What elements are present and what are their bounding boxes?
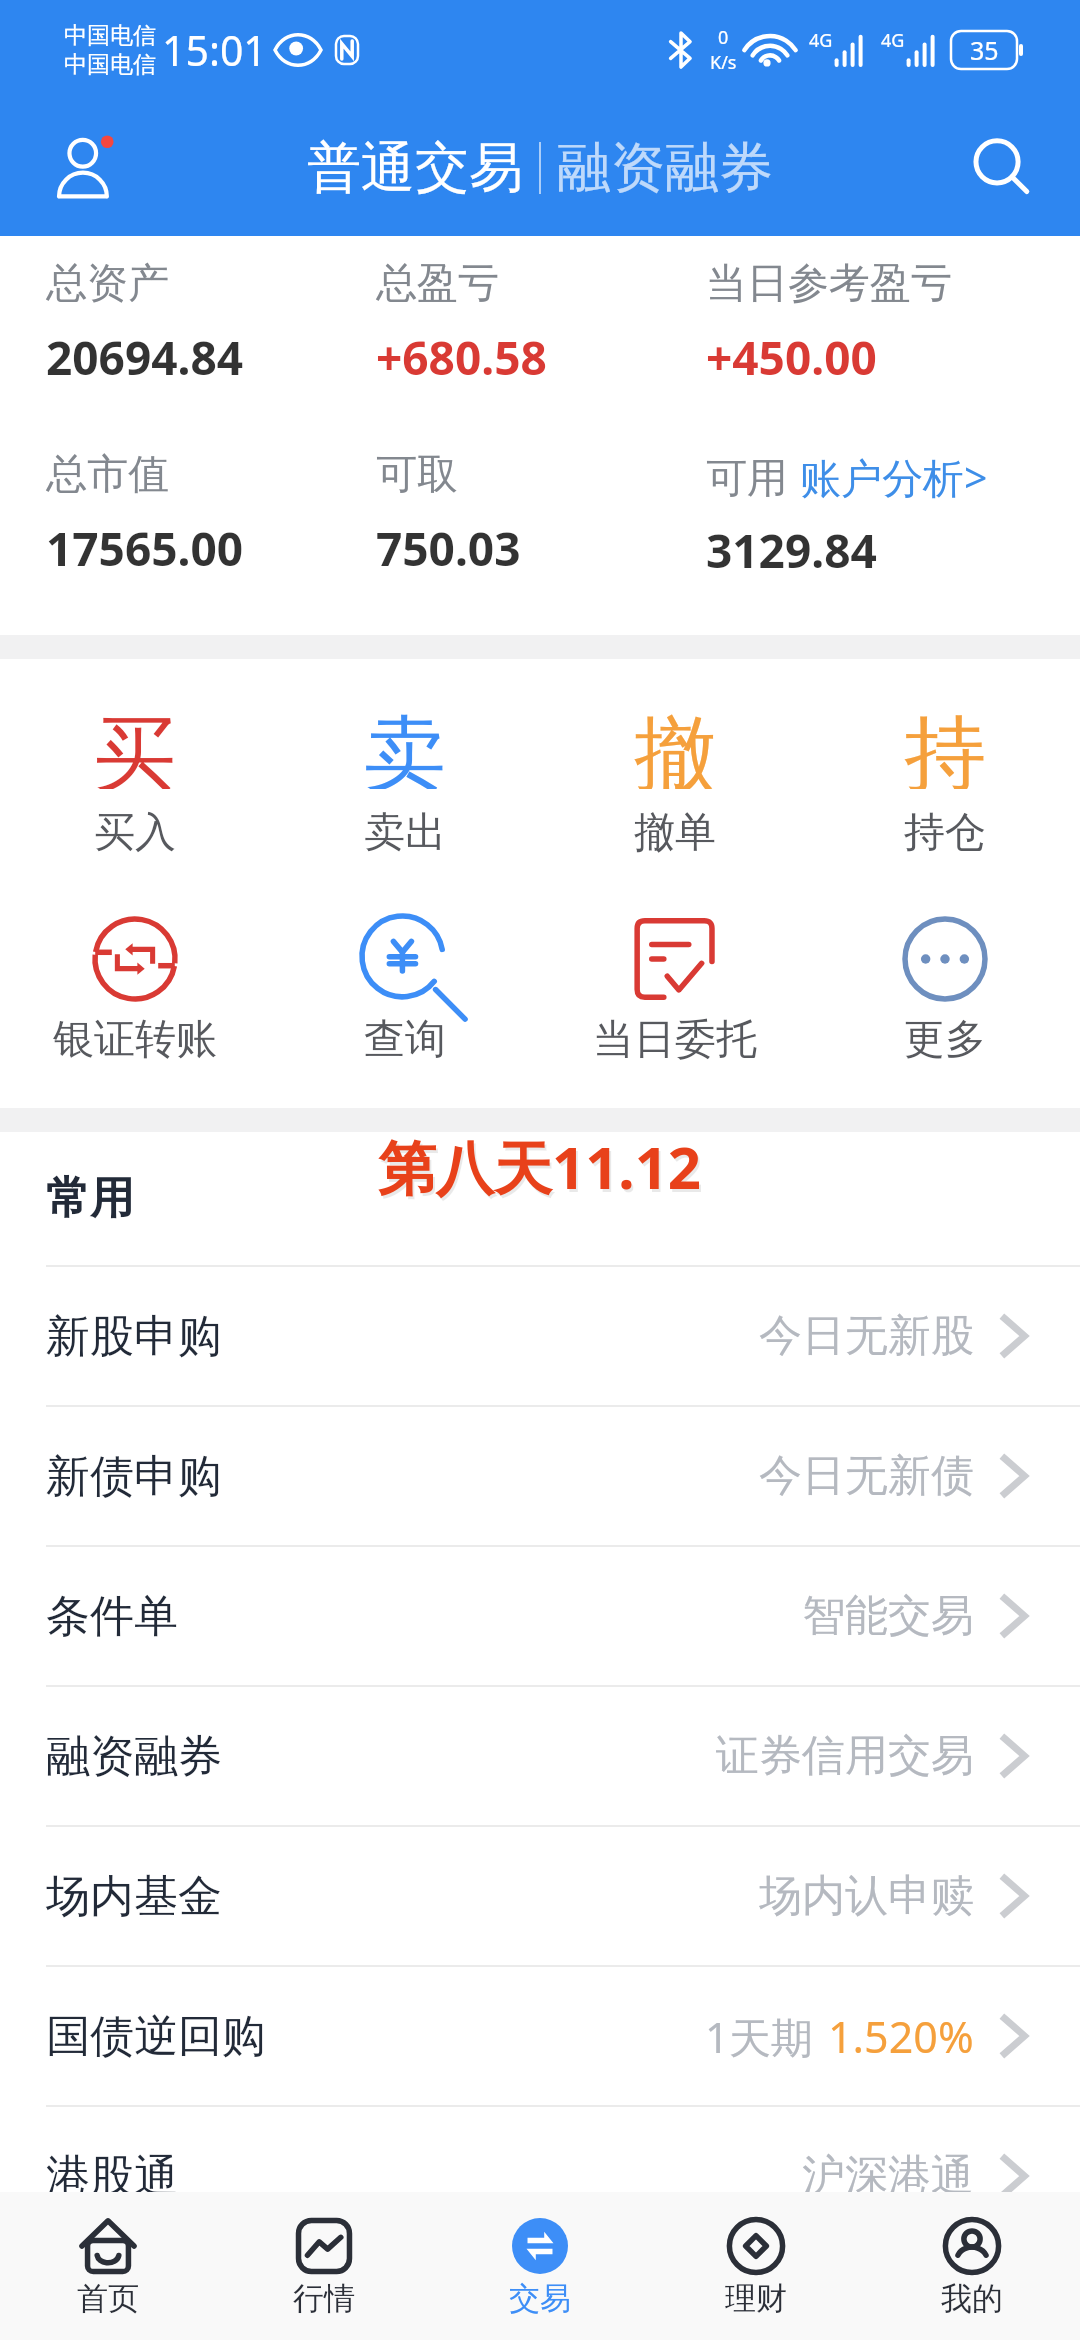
staticText: 当日委托	[593, 1014, 757, 1066]
staticText: 国债逆回购	[46, 2009, 266, 2064]
button[interactable]: Account	[44, 126, 128, 210]
staticText: 15:01	[162, 22, 267, 78]
staticText: 1.520%	[828, 2007, 974, 2066]
button[interactable]: 融资融券	[0, 1687, 1080, 1825]
staticText: 新债申购	[46, 1449, 222, 1504]
staticText: 我的	[941, 2279, 1003, 2318]
staticText: 750.03	[376, 517, 521, 580]
button[interactable]: 国债逆回购	[0, 1967, 1080, 2105]
button[interactable]: 普通交易	[307, 134, 523, 202]
button[interactable]: 新债申购	[0, 1407, 1080, 1545]
staticText: 场内认申赎	[759, 1869, 974, 1923]
button[interactable]: 我的	[864, 2192, 1080, 2340]
staticText: 3129.84	[706, 519, 877, 582]
button[interactable]: 条件单	[0, 1547, 1080, 1685]
button[interactable]: 新股申购	[0, 1267, 1080, 1405]
staticText: 持	[904, 703, 986, 789]
staticText: 可用	[706, 453, 788, 505]
staticText: 证券信用交易	[716, 1729, 974, 1783]
staticText: 总市值	[46, 449, 169, 501]
staticText: 银证转账	[53, 1014, 217, 1066]
staticText: 卖	[364, 703, 446, 789]
button[interactable]: 场内基金	[0, 1827, 1080, 1965]
staticText: K/s	[710, 50, 737, 75]
staticText: 今日无新股	[759, 1309, 974, 1363]
staticText: 查询	[364, 1014, 446, 1066]
staticText: 理财	[725, 2279, 787, 2318]
staticText: 智能交易	[802, 1589, 974, 1643]
staticText: 今日无新债	[759, 1449, 974, 1503]
staticText: 20694.84	[46, 326, 244, 389]
staticText: 第八天11.12	[378, 1127, 702, 1206]
staticText: 1天期	[705, 2008, 814, 2065]
staticText: 可取	[376, 449, 458, 501]
staticText: 买入	[94, 807, 176, 859]
button[interactable]: Search	[962, 128, 1042, 208]
staticText: 首页	[77, 2279, 139, 2318]
button[interactable]: 账户分析>	[800, 449, 988, 505]
staticText: 0	[718, 25, 729, 50]
staticText: 4G	[881, 28, 905, 53]
staticText: 第八天11.12	[380, 1130, 704, 1209]
button[interactable]: 银证转账	[0, 916, 270, 1066]
staticText: 持仓	[904, 807, 986, 859]
button[interactable]: 持	[810, 703, 1080, 859]
button[interactable]: 更多	[810, 916, 1080, 1066]
staticText: 撤单	[634, 807, 716, 859]
staticText: 买	[94, 703, 176, 789]
staticText: +680.58	[376, 326, 547, 389]
button[interactable]: 首页	[0, 2192, 216, 2340]
staticText: 35	[970, 33, 999, 67]
staticText: 中国电信	[64, 50, 156, 79]
button[interactable]: 行情	[216, 2192, 432, 2340]
staticText: 场内基金	[46, 1869, 222, 1924]
staticText: 4G	[809, 28, 833, 53]
button[interactable]: 查询	[270, 916, 540, 1066]
staticText: 当日参考盈亏	[706, 258, 952, 310]
staticText: 常用	[46, 1171, 134, 1226]
button[interactable]: 港股通	[0, 2107, 1080, 2245]
staticText: 融资融券	[46, 1729, 222, 1784]
staticText: 中国电信	[64, 21, 156, 50]
staticText: 港股通	[46, 2149, 178, 2204]
staticText: 总盈亏	[376, 258, 499, 310]
staticText: +450.00	[706, 326, 877, 389]
button[interactable]: 理财	[648, 2192, 864, 2340]
staticText: 卖出	[364, 807, 446, 859]
staticText: 新股申购	[46, 1309, 222, 1364]
button[interactable]: 买	[0, 703, 270, 859]
staticText: 17565.00	[46, 517, 244, 580]
staticText: 沪深港通	[802, 2149, 974, 2203]
button[interactable]: 当日委托	[540, 916, 810, 1066]
staticText: 条件单	[46, 1589, 178, 1644]
staticText: 更多	[904, 1014, 986, 1066]
staticText: 总资产	[46, 258, 169, 310]
button[interactable]: 卖	[270, 703, 540, 859]
staticText: 交易	[509, 2279, 571, 2318]
button[interactable]: 撤	[540, 703, 810, 859]
staticText: 撤	[634, 703, 716, 789]
button[interactable]: 交易	[432, 2192, 648, 2340]
button[interactable]: 融资融券	[557, 134, 773, 202]
staticText: 行情	[293, 2279, 355, 2318]
